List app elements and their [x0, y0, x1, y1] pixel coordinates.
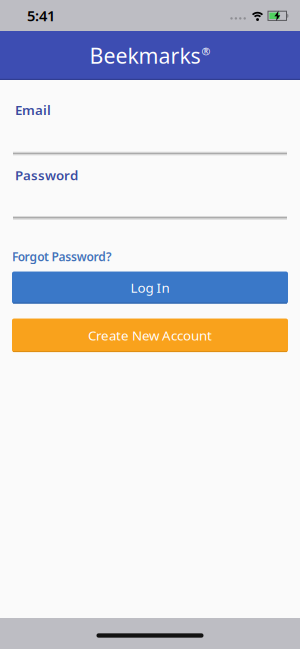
button[interactable]: Create New Account — [12, 318, 288, 352]
staticText: Forgot Password? — [12, 249, 112, 264]
staticText: Beekmarks — [89, 41, 200, 70]
staticText: Email — [15, 101, 51, 119]
staticText: ® — [201, 44, 210, 58]
button[interactable]: Forgot Password? — [12, 249, 112, 264]
staticText: Password — [15, 166, 78, 184]
staticText: Create New Account — [88, 326, 212, 344]
staticText: Log In — [130, 279, 169, 296]
button[interactable]: Log In — [12, 271, 288, 303]
staticText: 5:41 — [27, 6, 55, 25]
